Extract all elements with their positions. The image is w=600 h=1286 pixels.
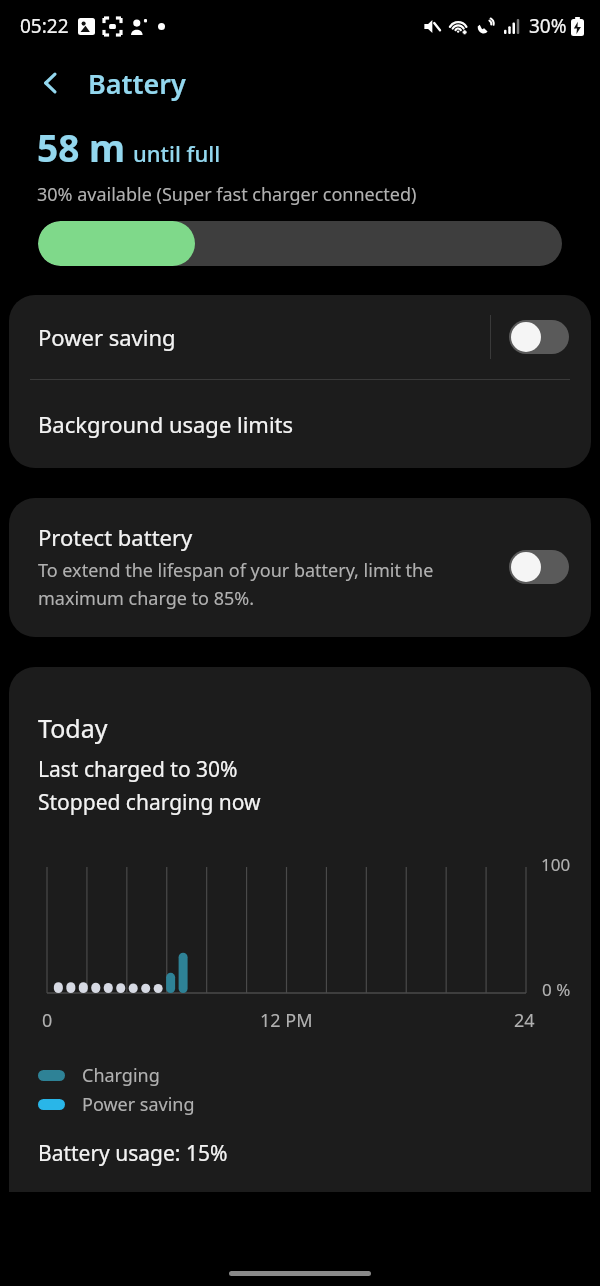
staticText: 58 m	[37, 122, 126, 172]
staticText: Battery usage: 15%	[38, 1139, 228, 1168]
staticText: until full	[133, 138, 221, 168]
staticText: Power saving	[82, 1092, 195, 1117]
staticText: maximum charge to 85%.	[38, 586, 255, 611]
staticText: 12 PM	[260, 1008, 313, 1033]
button[interactable]: Protect battery	[9, 498, 591, 637]
staticText: Power saving	[38, 322, 176, 352]
button[interactable]: Toggle	[509, 550, 569, 584]
staticText: To extend the lifespan of your battery, …	[38, 558, 434, 583]
staticText: Background usage limits	[38, 409, 294, 439]
staticText: Stopped charging now	[38, 788, 261, 817]
staticText: 0 %	[542, 978, 571, 1001]
staticText: 100	[541, 853, 571, 876]
staticText: Charging	[82, 1063, 160, 1088]
staticText: 24	[514, 1008, 535, 1033]
button[interactable]: Toggle	[509, 320, 569, 354]
button[interactable]: Power saving	[9, 295, 591, 379]
staticText: 0	[42, 1008, 53, 1033]
staticText: Today	[38, 711, 108, 745]
staticText: 05:22	[20, 13, 69, 39]
staticText: Protect battery	[38, 522, 193, 552]
button[interactable]: Back	[30, 62, 72, 104]
button[interactable]: Background usage limits	[9, 380, 591, 468]
staticText: 30% available (Super fast charger connec…	[37, 182, 417, 207]
staticText: Battery	[88, 65, 186, 102]
staticText: 30%	[529, 13, 567, 39]
staticText: Last charged to 30%	[38, 755, 238, 784]
